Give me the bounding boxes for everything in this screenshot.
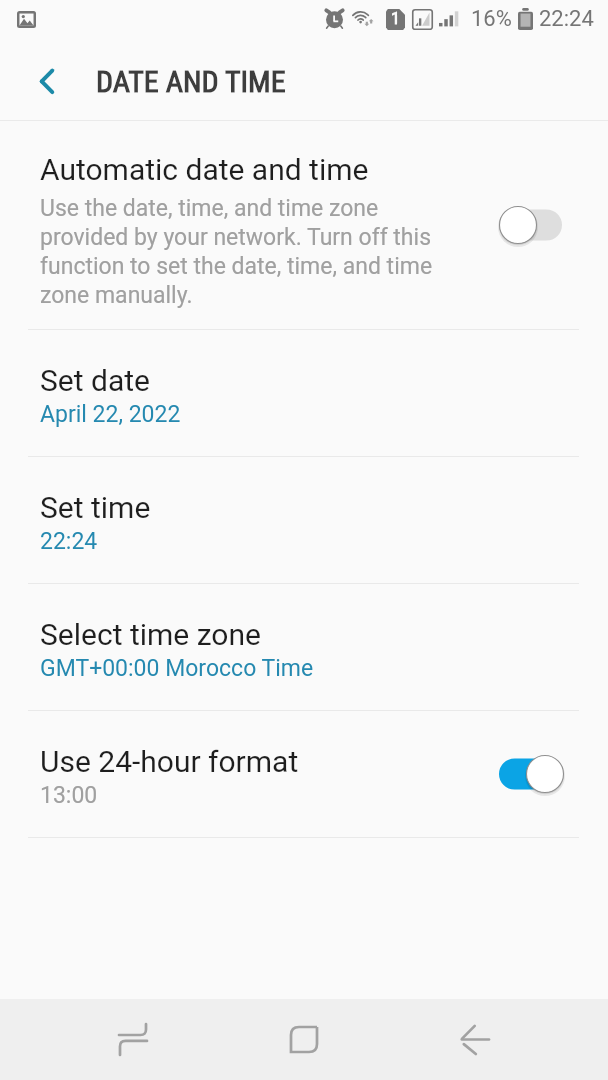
staticText: Use 24-hour format [40,744,299,779]
button[interactable]: Switch on [495,752,567,796]
button[interactable]: Home [218,999,390,1080]
staticText: April 22, 2022 [40,401,181,428]
staticText: 16% [471,6,512,32]
staticText: 13:00 [40,782,98,809]
staticText: Set time [40,490,151,525]
staticText: Use the date, time, and time zone provid… [40,195,440,308]
staticText: 22:24 [539,6,594,32]
button[interactable]: Use 24-hour format [0,711,608,837]
button[interactable]: Select time zone [0,584,608,710]
button[interactable]: Automatic date and time [0,120,608,329]
staticText: DATE AND TIME [96,64,286,99]
staticText: Set date [40,363,150,398]
staticText: Select time zone [40,617,261,652]
button[interactable]: Back [389,999,561,1080]
staticText: Automatic date and time [40,152,369,187]
staticText: 1 [391,9,400,28]
button[interactable]: Set time [0,457,608,583]
button[interactable]: Recents [47,999,219,1080]
staticText: GMT+00:00 Morocco Time [40,655,314,682]
button[interactable]: Set date [0,330,608,456]
button[interactable]: Switch off [495,203,567,247]
staticText: 22:24 [40,528,98,555]
button[interactable]: Navigate up [0,44,88,120]
